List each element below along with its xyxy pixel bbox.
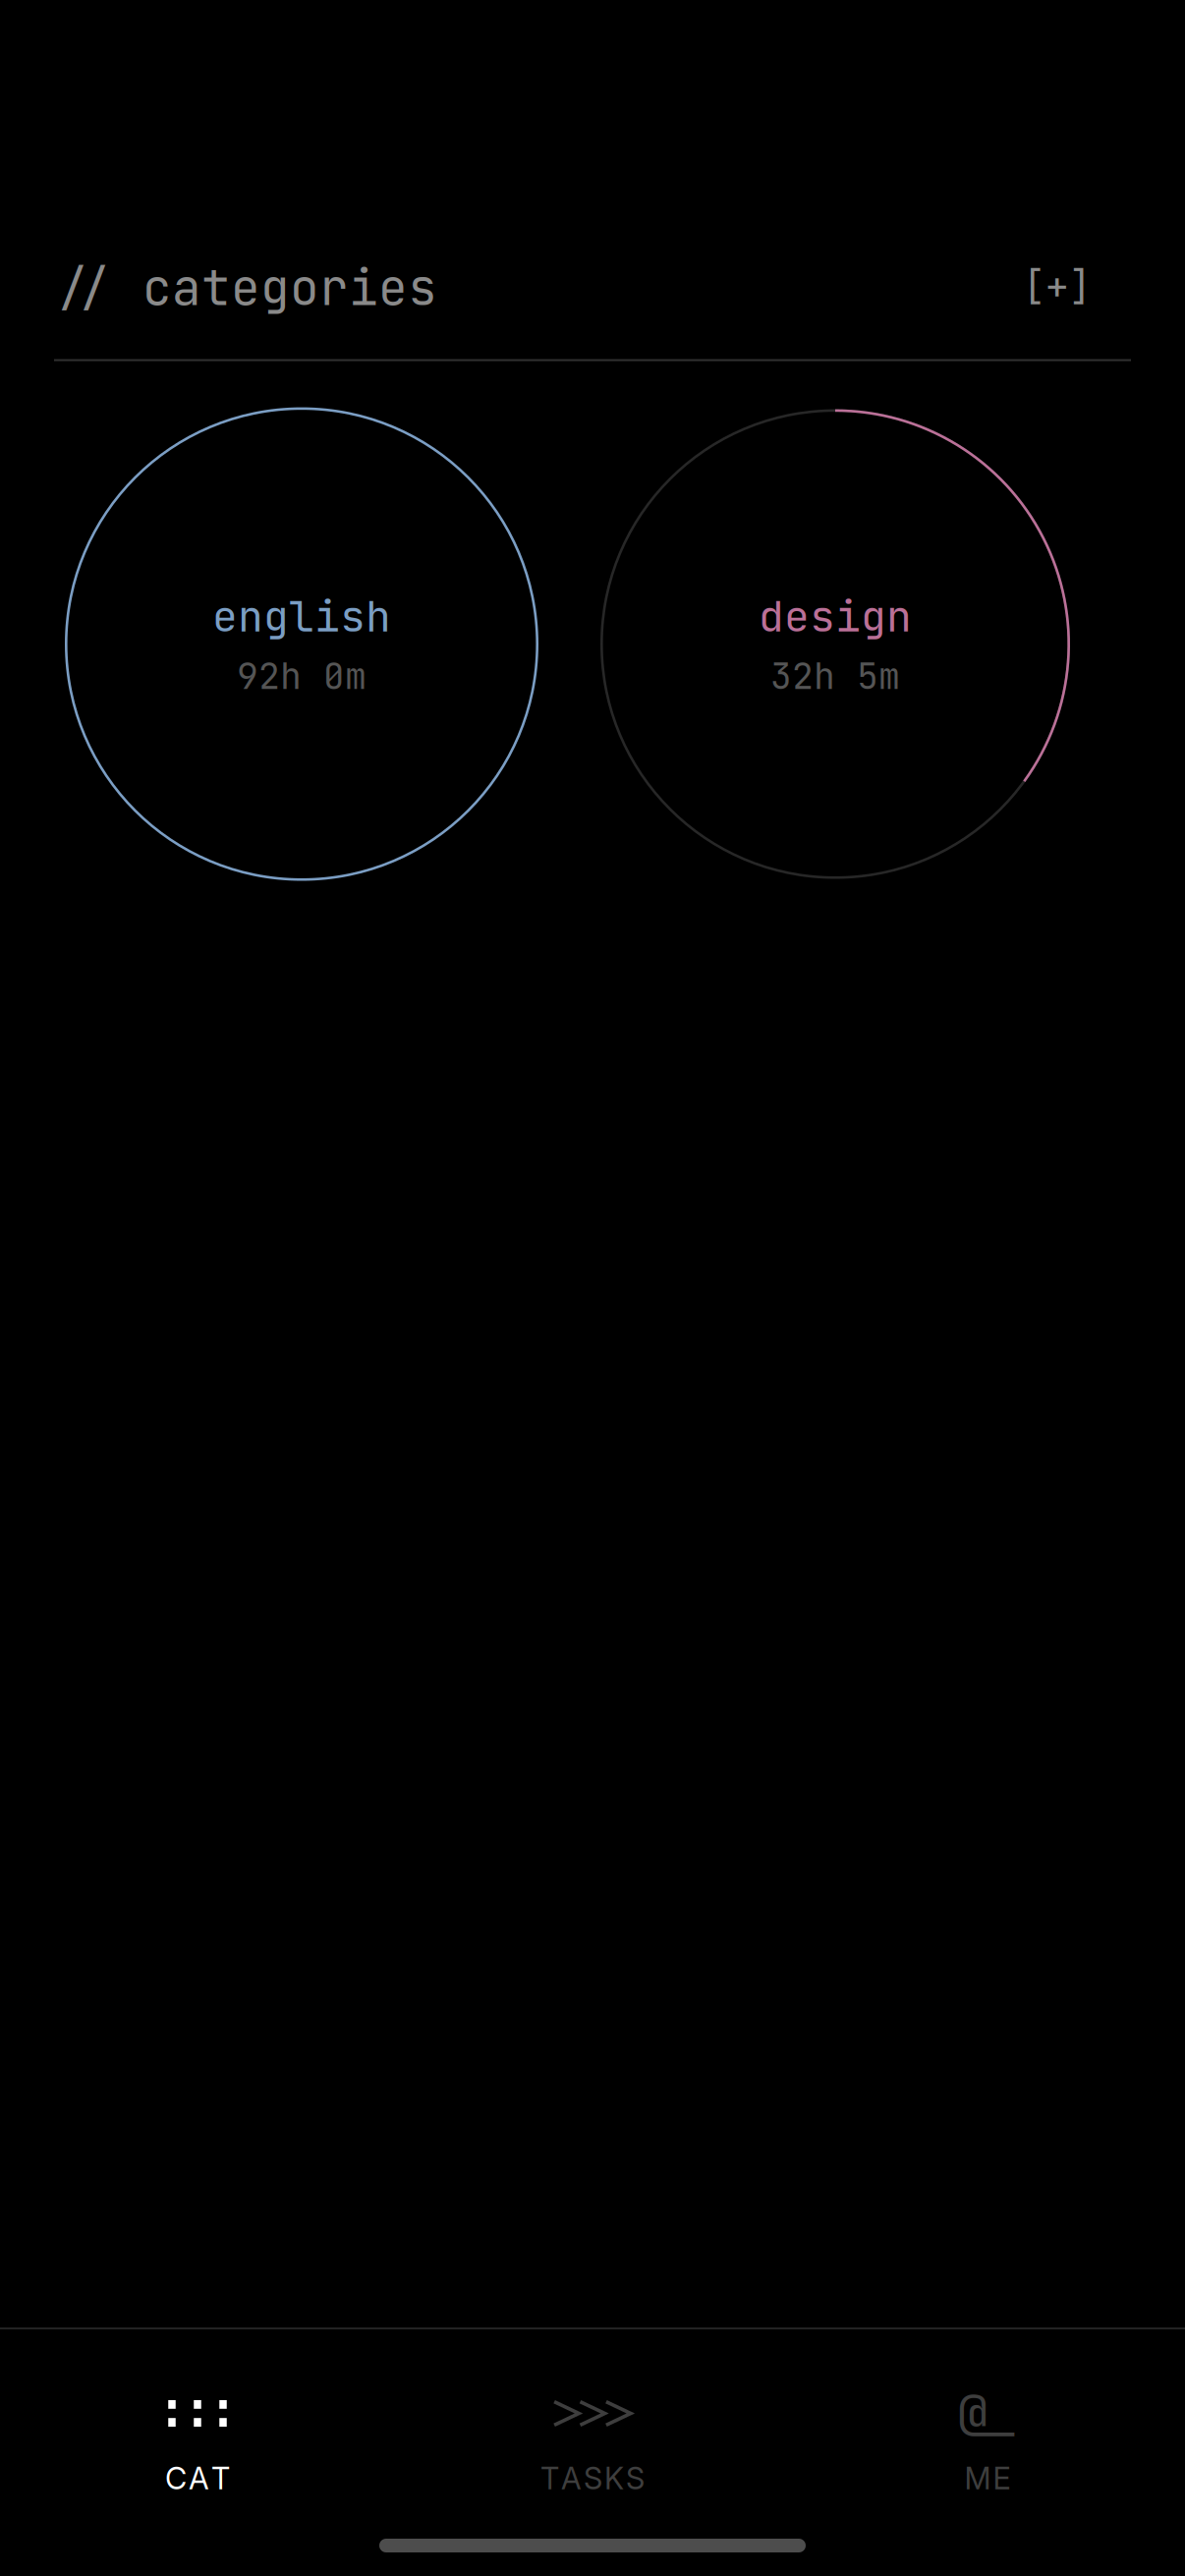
staticText: @_ xyxy=(958,2381,1017,2446)
button[interactable]: [+] xyxy=(1003,251,1131,325)
staticText: 92h 0m xyxy=(237,652,367,700)
button[interactable]: T A S K S xyxy=(395,2399,790,2497)
staticText: english xyxy=(212,588,391,644)
button[interactable]: C A T xyxy=(0,2399,395,2497)
staticText: T A S K S xyxy=(540,2460,645,2497)
button[interactable]: @_ xyxy=(790,2399,1185,2497)
staticText: 32h 5m xyxy=(770,652,900,700)
staticText: C A T xyxy=(165,2460,230,2497)
button[interactable]: english xyxy=(65,407,538,881)
button[interactable]: design xyxy=(600,409,1070,879)
staticText: M E xyxy=(964,2460,1011,2497)
staticText: // categories xyxy=(54,256,437,320)
staticText: [+] xyxy=(1023,261,1091,312)
staticText: design xyxy=(759,588,912,644)
